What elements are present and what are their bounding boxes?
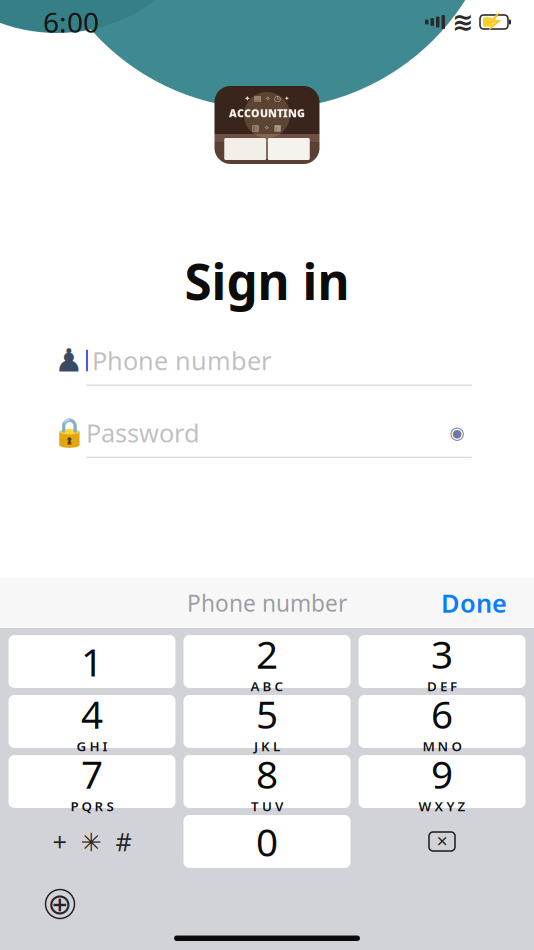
- staticText: M N O: [422, 737, 461, 755]
- staticText: T U V: [251, 797, 283, 815]
- staticText: Phone number: [187, 588, 347, 618]
- button[interactable]: Delete: [358, 815, 525, 868]
- staticText: ✦: [244, 94, 251, 103]
- button[interactable]: 6: [358, 695, 525, 748]
- staticText: ▥: [252, 123, 260, 132]
- staticText: ✧: [265, 95, 271, 102]
- staticText: 6:00: [43, 3, 99, 41]
- button[interactable]: Next keyboard: [30, 882, 90, 926]
- staticText: 0: [256, 816, 278, 867]
- button[interactable]: 8: [183, 755, 350, 808]
- staticText: 7: [81, 748, 103, 799]
- staticText: ▦: [274, 123, 282, 132]
- staticText: ♟: [54, 342, 83, 379]
- staticText: ≋: [452, 8, 473, 36]
- staticText: Password: [86, 416, 200, 449]
- staticText: Phone number: [92, 344, 271, 377]
- staticText: 🔒: [51, 417, 86, 449]
- staticText: ✦: [284, 95, 290, 102]
- staticText: 2: [256, 628, 278, 679]
- staticText: ✧: [264, 124, 270, 132]
- staticText: ⊕: [47, 887, 72, 921]
- staticText: J K L: [254, 737, 280, 755]
- staticText: 3: [431, 628, 453, 679]
- button[interactable]: 4: [8, 695, 175, 748]
- staticText: 9: [431, 748, 453, 799]
- staticText: ▤: [254, 94, 262, 103]
- staticText: Done: [441, 586, 507, 620]
- staticText: G H I: [76, 737, 107, 755]
- staticText: ✕: [436, 833, 448, 850]
- button[interactable]: 7: [8, 755, 175, 808]
- button[interactable]: Phone number: [0, 578, 534, 628]
- staticText: D E F: [427, 677, 457, 695]
- staticText: A B C: [250, 677, 283, 695]
- staticText: 8: [256, 748, 278, 799]
- staticText: 5: [256, 688, 278, 739]
- staticText: + ✳ #: [52, 825, 131, 858]
- staticText: 4: [81, 688, 103, 739]
- staticText: 6: [431, 688, 453, 739]
- staticText: ACCOUNTING: [229, 106, 305, 120]
- staticText: 1: [81, 636, 103, 687]
- staticText: ◷: [274, 94, 281, 103]
- staticText: Sign in: [184, 248, 349, 313]
- staticText: ⚡: [484, 13, 504, 31]
- staticText: P Q R S: [70, 797, 113, 815]
- button[interactable]: 2: [183, 635, 350, 688]
- button[interactable]: Plus star pound: [8, 815, 175, 868]
- button[interactable]: 5: [183, 695, 350, 748]
- button[interactable]: 3: [358, 635, 525, 688]
- button[interactable]: Show password: [442, 418, 472, 448]
- staticText: W X Y Z: [418, 797, 465, 815]
- button[interactable]: 1: [8, 635, 175, 688]
- staticText: ◉: [449, 423, 464, 443]
- button[interactable]: 9: [358, 755, 525, 808]
- button[interactable]: 0: [183, 815, 350, 868]
